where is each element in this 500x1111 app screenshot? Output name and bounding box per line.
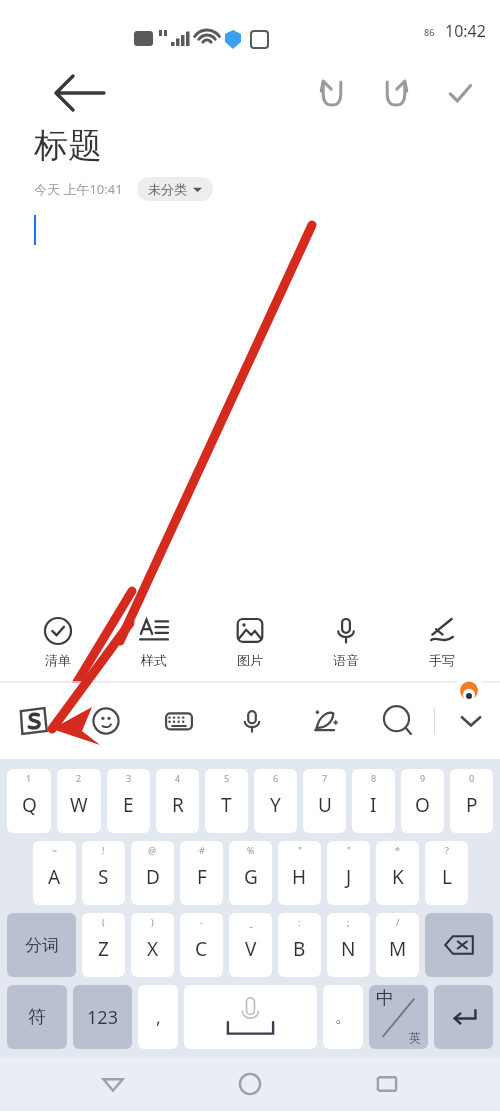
button[interactable]: Recents bbox=[363, 1060, 411, 1108]
button[interactable]: _ bbox=[229, 913, 272, 977]
button[interactable]: ; bbox=[327, 913, 370, 977]
staticText: 样式 bbox=[141, 652, 167, 668]
staticText: P bbox=[466, 792, 478, 818]
staticText: M bbox=[389, 936, 407, 962]
staticText: 86 bbox=[424, 26, 435, 38]
staticText: * bbox=[395, 844, 400, 856]
staticText: @ bbox=[148, 844, 157, 856]
button[interactable]: Done bbox=[438, 71, 482, 115]
staticText: % bbox=[247, 844, 255, 856]
button[interactable]: Undo bbox=[310, 71, 354, 115]
button[interactable]: Voice input bbox=[233, 702, 271, 740]
button[interactable]: Backspace bbox=[425, 913, 493, 977]
staticText: 中 bbox=[376, 987, 394, 1010]
staticText: : bbox=[298, 916, 301, 928]
button[interactable]: : bbox=[278, 913, 321, 977]
button[interactable]: ) bbox=[131, 913, 174, 977]
staticText: O bbox=[415, 792, 430, 818]
staticText: 2 bbox=[76, 772, 82, 784]
staticText: 语音 bbox=[333, 652, 359, 668]
button[interactable]: Space bbox=[184, 985, 317, 1049]
button[interactable]: 3 bbox=[107, 769, 150, 833]
staticText: T bbox=[221, 792, 232, 818]
button[interactable]: ! bbox=[82, 841, 125, 905]
staticText: F bbox=[197, 864, 207, 890]
staticText: K bbox=[392, 864, 404, 890]
button[interactable]: 0 bbox=[450, 769, 493, 833]
button[interactable]: " bbox=[327, 841, 370, 905]
staticText: Q bbox=[22, 792, 37, 818]
staticText: ~ bbox=[52, 844, 58, 856]
button[interactable]: ~ bbox=[33, 841, 76, 905]
staticText: 。 bbox=[335, 1007, 351, 1027]
staticText: 标题 bbox=[34, 124, 102, 167]
button[interactable]: # bbox=[180, 841, 223, 905]
staticText: ? bbox=[445, 844, 449, 856]
button[interactable]: 符 bbox=[7, 985, 67, 1049]
button[interactable]: 语音 bbox=[308, 612, 384, 672]
button[interactable]: 分词 bbox=[7, 913, 76, 977]
staticText: - bbox=[200, 916, 203, 928]
button[interactable]: Keyboard layout bbox=[160, 702, 198, 740]
staticText: 9 bbox=[420, 772, 426, 784]
button[interactable]: @ bbox=[131, 841, 174, 905]
button[interactable]: Sogou input bbox=[14, 702, 52, 740]
staticText: _ bbox=[249, 916, 253, 928]
button[interactable]: - bbox=[180, 913, 223, 977]
staticText: " bbox=[347, 844, 351, 856]
button[interactable]: 手写 bbox=[404, 612, 480, 672]
button[interactable]: Back bbox=[22, 69, 70, 117]
staticText: 清单 bbox=[45, 652, 71, 668]
button[interactable]: , bbox=[138, 985, 178, 1049]
button[interactable]: Back bbox=[89, 1060, 137, 1108]
button[interactable]: ( bbox=[82, 913, 125, 977]
staticText: 1 bbox=[26, 772, 32, 784]
button[interactable]: * bbox=[376, 841, 419, 905]
staticText: Y bbox=[270, 792, 281, 818]
button[interactable]: " bbox=[278, 841, 321, 905]
staticText: 7 bbox=[322, 772, 328, 784]
button[interactable]: 样式 bbox=[116, 612, 192, 672]
staticText: Z bbox=[98, 936, 109, 962]
button[interactable]: 9 bbox=[401, 769, 444, 833]
button[interactable]: 4 bbox=[156, 769, 199, 833]
staticText: E bbox=[123, 792, 134, 818]
button[interactable]: Switch Chinese English bbox=[369, 985, 428, 1049]
staticText: ; bbox=[347, 916, 350, 928]
staticText: 5 bbox=[224, 772, 230, 784]
staticText: C bbox=[195, 936, 208, 962]
button[interactable]: Home bbox=[226, 1060, 274, 1108]
button[interactable]: Enter bbox=[434, 985, 493, 1049]
button[interactable]: / bbox=[376, 913, 419, 977]
staticText: 符 bbox=[28, 1006, 46, 1029]
button[interactable]: 清单 bbox=[20, 612, 96, 672]
button[interactable]: Redo bbox=[374, 71, 418, 115]
staticText: H bbox=[292, 864, 307, 890]
staticText: 10:42 bbox=[445, 20, 486, 42]
button[interactable]: 1 bbox=[7, 769, 51, 833]
staticText: 分词 bbox=[25, 935, 59, 956]
button[interactable]: 8 bbox=[352, 769, 395, 833]
button[interactable]: Hide keyboard bbox=[452, 702, 490, 740]
button[interactable]: 7 bbox=[303, 769, 346, 833]
staticText: 8 bbox=[371, 772, 377, 784]
button[interactable]: Handwriting bbox=[306, 702, 344, 740]
button[interactable]: 。 bbox=[323, 985, 363, 1049]
button[interactable]: 图片 bbox=[212, 612, 288, 672]
button[interactable]: ? bbox=[425, 841, 468, 905]
button[interactable]: 6 bbox=[254, 769, 297, 833]
staticText: 0 bbox=[469, 772, 475, 784]
staticText: U bbox=[318, 792, 332, 818]
staticText: J bbox=[346, 864, 352, 890]
staticText: 3 bbox=[126, 772, 132, 784]
button[interactable]: 5 bbox=[205, 769, 248, 833]
staticText: ( bbox=[102, 916, 105, 928]
button[interactable]: 未分类 bbox=[137, 177, 213, 201]
button[interactable]: Emoji bbox=[87, 702, 125, 740]
staticText: 英 bbox=[409, 1030, 421, 1045]
button[interactable]: % bbox=[229, 841, 272, 905]
button[interactable]: 2 bbox=[57, 769, 101, 833]
staticText: X bbox=[147, 936, 159, 962]
button[interactable]: Search bbox=[379, 702, 417, 740]
button[interactable]: 123 bbox=[73, 985, 132, 1049]
